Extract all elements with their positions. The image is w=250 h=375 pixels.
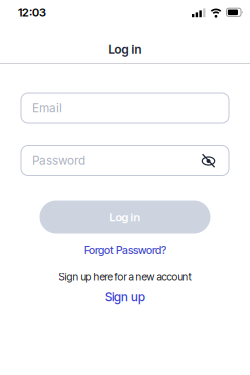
staticText: Forgot Password? xyxy=(84,243,166,257)
staticText: 12:03 xyxy=(18,6,46,19)
staticText: Log in xyxy=(108,42,141,56)
staticText: Sign up xyxy=(105,289,145,304)
staticText: Log in xyxy=(109,210,140,224)
staticText: Email xyxy=(32,101,62,115)
staticText: Password xyxy=(32,153,85,168)
button[interactable] xyxy=(201,153,216,168)
button[interactable]: Password xyxy=(21,145,229,175)
button[interactable]: Log in xyxy=(39,200,210,233)
button[interactable]: Email xyxy=(21,93,229,123)
staticText: Sign up here for a new account xyxy=(58,271,191,283)
button[interactable]: Forgot Password? xyxy=(84,243,166,257)
button[interactable]: Sign up xyxy=(105,289,145,304)
